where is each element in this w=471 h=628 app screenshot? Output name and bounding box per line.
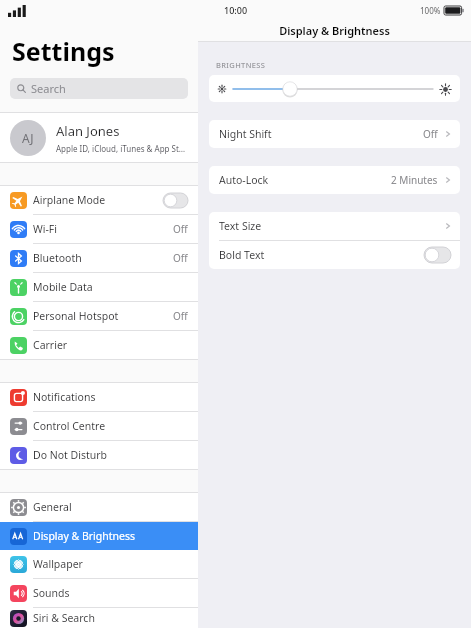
staticText: Sounds (33, 586, 198, 600)
staticText: 2 Minutes (391, 173, 438, 187)
staticText: Auto-Lock (219, 173, 391, 187)
staticText: BRIGHTNESS (216, 60, 266, 70)
staticText: Alan Jones (56, 122, 120, 140)
staticText: Off (173, 222, 188, 236)
staticText: 100% (420, 5, 441, 16)
button[interactable]: Display & Brightness (0, 522, 198, 550)
staticText: Mobile Data (33, 280, 198, 294)
staticText: 10:00 (224, 4, 248, 16)
staticText: Personal Hotspot (33, 309, 173, 323)
button[interactable]: Wi-Fi (0, 215, 198, 243)
button[interactable]: Mobile Data (0, 273, 198, 301)
button[interactable]: AJ (0, 113, 198, 162)
button[interactable]: Do Not Disturb (0, 441, 198, 469)
staticText: Bold Text (219, 248, 424, 262)
staticText: Control Centre (33, 419, 198, 433)
button[interactable]: Airplane Mode (0, 186, 198, 214)
staticText: Display & Brightness (33, 529, 198, 543)
button[interactable]: Sounds (0, 579, 198, 607)
button[interactable]: Bold Text (209, 241, 460, 269)
button[interactable]: General (0, 493, 198, 521)
button[interactable]: Siri & Search (0, 608, 198, 628)
button[interactable]: Text Size (209, 212, 460, 240)
staticText: General (33, 500, 198, 514)
staticText: Bluetooth (33, 251, 173, 265)
staticText: Wallpaper (33, 557, 198, 571)
staticText: Wi-Fi (33, 222, 173, 236)
button[interactable]: Carrier (0, 331, 198, 359)
button[interactable]: Personal Hotspot (0, 302, 198, 330)
staticText: Carrier (33, 338, 198, 352)
staticText: Airplane Mode (33, 193, 163, 207)
staticText: Off (173, 309, 188, 323)
staticText: Text Size (219, 219, 444, 233)
button[interactable]: Bluetooth (0, 244, 198, 272)
staticText: Off (423, 127, 438, 141)
button[interactable]: Search (10, 78, 188, 99)
staticText: Siri & Search (33, 611, 198, 625)
staticText: AJ (22, 130, 34, 146)
button[interactable]: Control Centre (0, 412, 198, 440)
staticText: Notifications (33, 390, 198, 404)
staticText: Search (31, 81, 66, 96)
button[interactable]: Night Shift (209, 120, 460, 148)
button[interactable]: Wallpaper (0, 550, 198, 578)
button[interactable]: Notifications (0, 383, 198, 411)
staticText: Settings (12, 34, 115, 68)
staticText: Display & Brightness (279, 23, 390, 38)
staticText: Do Not Disturb (33, 448, 198, 462)
staticText: Off (173, 251, 188, 265)
staticText: Night Shift (219, 127, 423, 141)
staticText: Apple ID, iCloud, iTunes & App St… (56, 143, 186, 154)
button[interactable]: Auto-Lock (209, 166, 460, 194)
